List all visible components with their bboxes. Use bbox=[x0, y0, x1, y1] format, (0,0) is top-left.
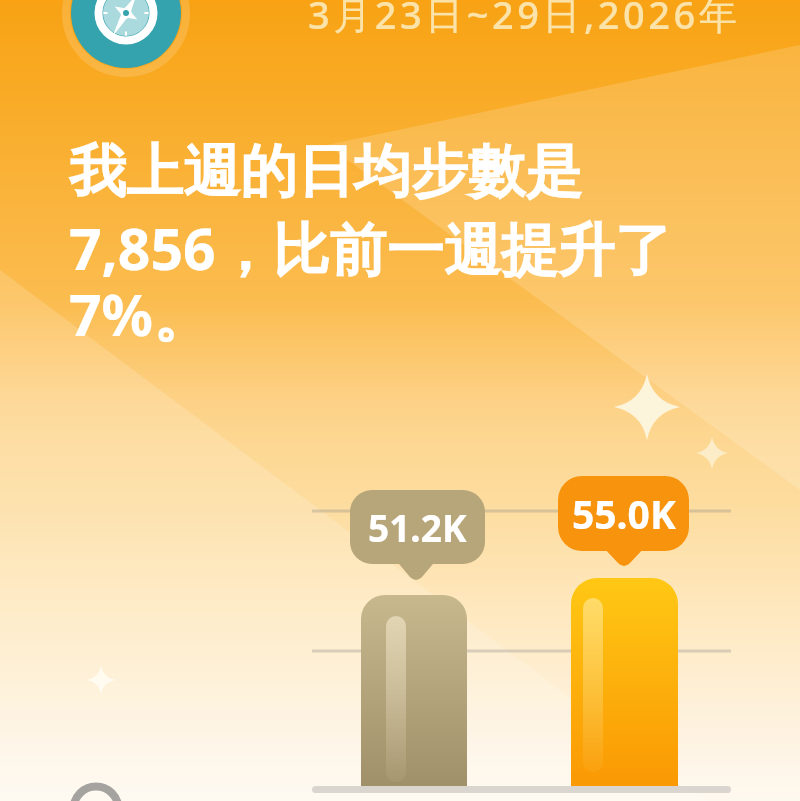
button[interactable]: 51.2K bbox=[350, 490, 485, 564]
staticText: 55.0K bbox=[572, 487, 676, 540]
staticText: 我上週的日均步數是 7,856，比前一週提升了 bbox=[69, 136, 672, 287]
staticText: 3月23日~29日,2026年 bbox=[308, 0, 741, 40]
staticText: 7%。 bbox=[69, 275, 211, 353]
staticText: 51.2K bbox=[368, 502, 467, 552]
button[interactable]: 55.0K bbox=[558, 476, 689, 551]
